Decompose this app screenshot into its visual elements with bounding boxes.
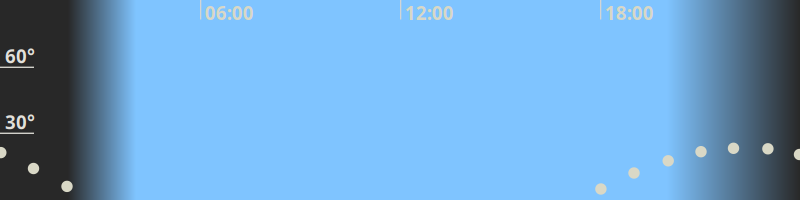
staticText: 12:00 <box>405 0 454 25</box>
staticText: 30° <box>5 110 35 134</box>
staticText: 06:00 <box>205 0 254 25</box>
staticText: 18:00 <box>605 0 654 25</box>
staticText: 60° <box>5 44 35 68</box>
